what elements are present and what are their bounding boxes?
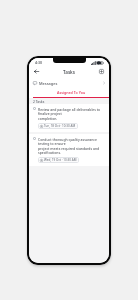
button[interactable]: Mark task complete [29,134,109,166]
staticText: Review and package all deliverables to f… [38,107,105,116]
staticText: 4:30 [35,60,42,65]
button[interactable]: Back [32,67,41,76]
button[interactable]: Mark task complete [29,104,109,132]
staticText: Conduct thorough quality assurance testi… [38,137,105,146]
button[interactable]: Mark task complete [33,107,36,110]
staticText: 2 Tasks [33,99,45,103]
button[interactable]: Wed, 19 Oct · 10:30 AM [38,157,79,163]
button[interactable]: Tue, 18 Oct · 10:30 AM [38,123,78,129]
staticText: project meets required standards and spe… [38,146,105,155]
staticText: Wed, 19 Oct · 10:30 AM [44,158,77,162]
button[interactable]: Assigned To You [33,88,109,98]
staticText: Assigned To You [57,90,86,95]
staticText: Tue, 18 Oct · 10:30 AM [44,124,76,128]
staticText: completion. [38,116,58,121]
button[interactable]: Messages [29,78,109,88]
staticText: Tasks [63,69,75,75]
button[interactable]: Mark task complete [33,137,36,140]
button[interactable]: New task [97,67,106,76]
staticText: Messages [39,81,58,86]
